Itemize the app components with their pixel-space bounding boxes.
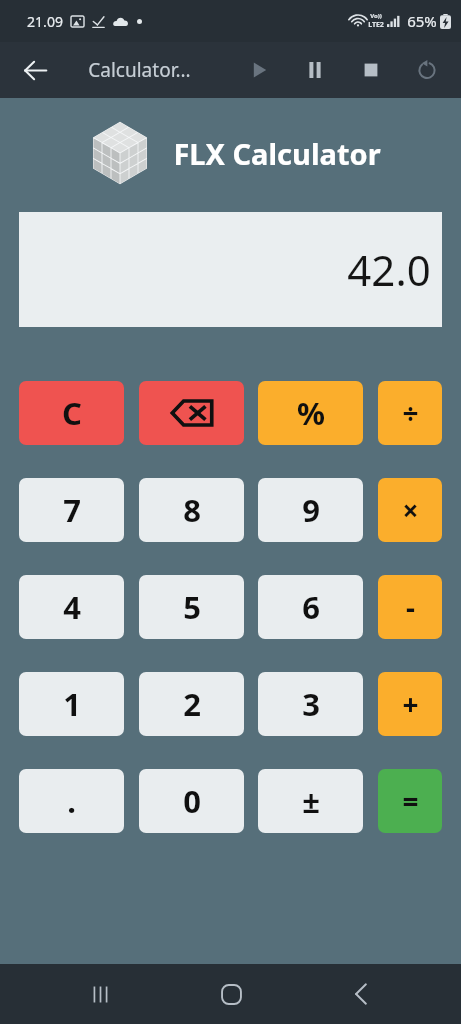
staticText: 7	[63, 489, 81, 531]
button[interactable]: 9	[258, 478, 363, 542]
button[interactable]: 0	[139, 769, 244, 833]
button[interactable]: Stop	[343, 42, 399, 98]
staticText: 9	[302, 489, 320, 531]
button[interactable]: Backspace	[139, 381, 244, 445]
staticText: 8	[183, 489, 201, 531]
button[interactable]: Restart	[399, 42, 455, 98]
staticText: 42.0	[347, 241, 431, 298]
staticText: ÷	[402, 394, 419, 432]
staticText: 0	[183, 780, 201, 822]
staticText: LTE2	[368, 20, 384, 30]
button[interactable]: Recents	[70, 964, 130, 1024]
staticText: ±	[302, 780, 320, 822]
staticText: FLX Calculator	[173, 134, 381, 173]
button[interactable]: %	[258, 381, 363, 445]
staticText: Calculator...	[88, 57, 191, 83]
button[interactable]: -	[378, 575, 442, 639]
staticText: 21.09	[27, 12, 63, 31]
staticText: -	[406, 588, 415, 626]
staticText: Vo))	[370, 12, 382, 20]
staticText: 4	[63, 586, 81, 628]
button[interactable]: ÷	[378, 381, 442, 445]
button[interactable]: 5	[139, 575, 244, 639]
button[interactable]: 3	[258, 672, 363, 736]
button[interactable]: Home	[201, 964, 261, 1024]
button[interactable]: Back	[331, 964, 391, 1024]
button[interactable]: 4	[19, 575, 124, 639]
staticText: 5	[183, 586, 201, 628]
button[interactable]: 6	[258, 575, 363, 639]
button[interactable]: .	[19, 769, 124, 833]
button[interactable]: Play	[231, 42, 287, 98]
button[interactable]: 1	[19, 672, 124, 736]
staticText: C	[62, 392, 82, 434]
button[interactable]: Pause	[287, 42, 343, 98]
staticText: ×	[402, 491, 419, 529]
button[interactable]: 2	[139, 672, 244, 736]
staticText: 3	[302, 683, 320, 725]
button[interactable]: Back	[12, 47, 58, 93]
staticText: 2	[183, 683, 201, 725]
button[interactable]: 7	[19, 478, 124, 542]
staticText: 65%	[407, 11, 437, 31]
staticText: +	[402, 685, 419, 723]
button[interactable]: ±	[258, 769, 363, 833]
staticText: %	[297, 392, 325, 434]
button[interactable]: =	[378, 769, 442, 833]
button[interactable]: +	[378, 672, 442, 736]
staticText: 6	[302, 586, 320, 628]
button[interactable]: 8	[139, 478, 244, 542]
staticText: 1	[63, 683, 81, 725]
button[interactable]: C	[19, 381, 124, 445]
staticText: .	[67, 780, 76, 822]
button[interactable]: ×	[378, 478, 442, 542]
staticText: =	[402, 782, 419, 820]
